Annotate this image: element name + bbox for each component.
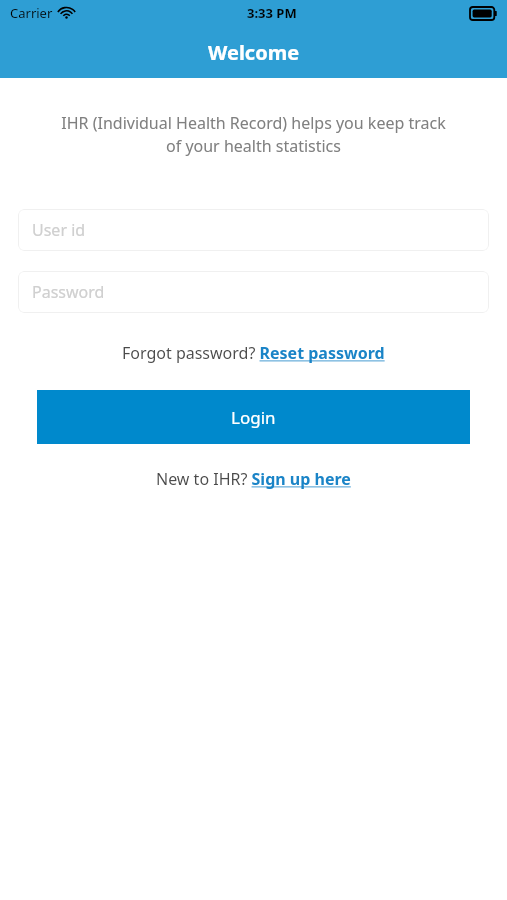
button[interactable]: Forgot password? Reset password xyxy=(114,338,393,368)
button[interactable]: Login xyxy=(37,390,470,444)
button[interactable]: Password xyxy=(18,271,489,313)
staticText: User id xyxy=(32,219,86,241)
staticText: Welcome xyxy=(208,39,300,66)
staticText: Password xyxy=(32,281,105,303)
other: Battery full xyxy=(470,7,497,20)
other: Wi-Fi signal xyxy=(59,7,74,19)
staticText: New to IHR? Sign up here xyxy=(156,468,351,490)
button[interactable]: New to IHR? Sign up here xyxy=(148,464,359,494)
staticText: Carrier xyxy=(10,4,53,22)
staticText: 3:33 PM xyxy=(247,4,297,22)
button[interactable]: User id xyxy=(18,209,489,251)
staticText: Forgot password? Reset password xyxy=(122,342,385,364)
staticText: Login xyxy=(231,406,276,429)
staticText: IHR (Individual Health Record) helps you… xyxy=(20,112,487,157)
